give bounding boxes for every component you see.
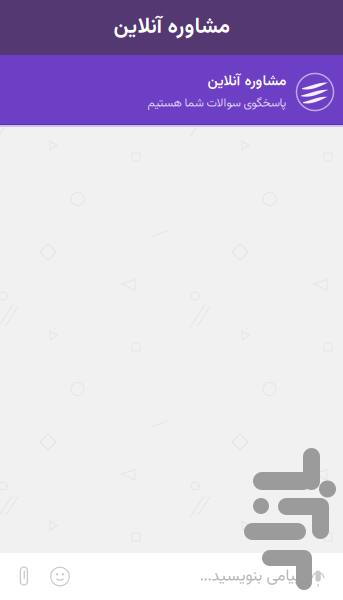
button[interactable]: Emoji (42, 553, 78, 600)
staticText: مشاوره آنلاین (113, 11, 230, 44)
button[interactable]: Attach file (6, 553, 42, 600)
staticText: پاسخگوی سوالات شما هستیم (147, 94, 286, 113)
button[interactable]: Record voice message (301, 553, 335, 600)
staticText: پیامی بنویسید... (199, 564, 301, 589)
staticText: مشاوره آنلاین (207, 70, 286, 93)
